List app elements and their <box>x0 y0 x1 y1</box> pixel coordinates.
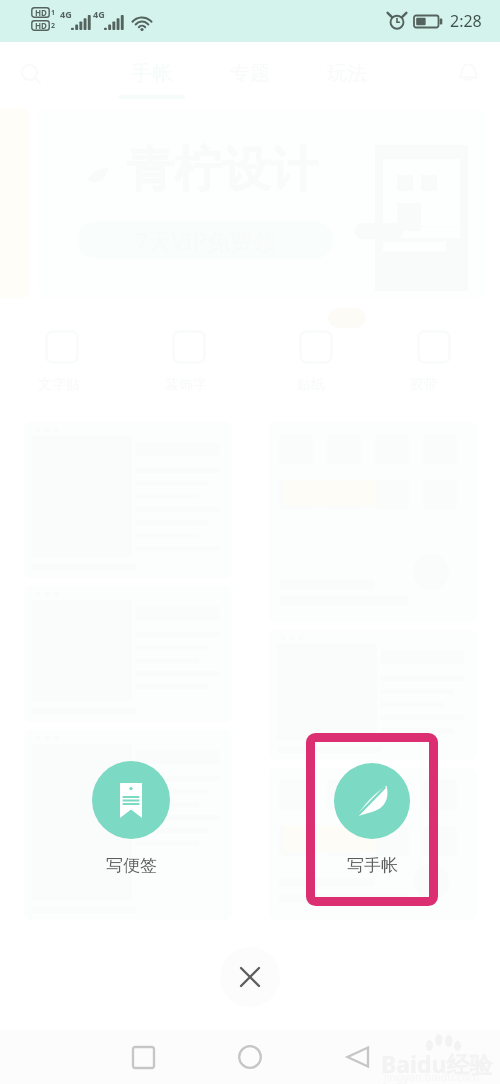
staticText: 4G <box>93 8 105 20</box>
staticText: 手帐 <box>131 60 173 86</box>
button[interactable]: Home <box>226 1033 274 1081</box>
button[interactable]: Recents <box>119 1033 167 1081</box>
staticText: 写便签 <box>106 855 157 876</box>
staticText: Baidu经验 <box>381 1048 493 1079</box>
staticText: HD <box>35 7 47 18</box>
staticText: jingyan.baidu.com <box>384 1069 480 1084</box>
staticText: 1 <box>51 8 56 18</box>
button[interactable]: Back <box>333 1033 381 1081</box>
staticText: HD <box>35 20 47 31</box>
button[interactable]: 写便签 <box>85 761 177 876</box>
staticText: 2:28 <box>450 10 482 32</box>
staticText: 2 <box>51 21 56 31</box>
staticText: 写手帐 <box>347 855 398 876</box>
button[interactable]: Close <box>220 947 280 1007</box>
staticText: 4G <box>60 8 72 20</box>
button[interactable]: 写手帐 <box>306 733 438 906</box>
